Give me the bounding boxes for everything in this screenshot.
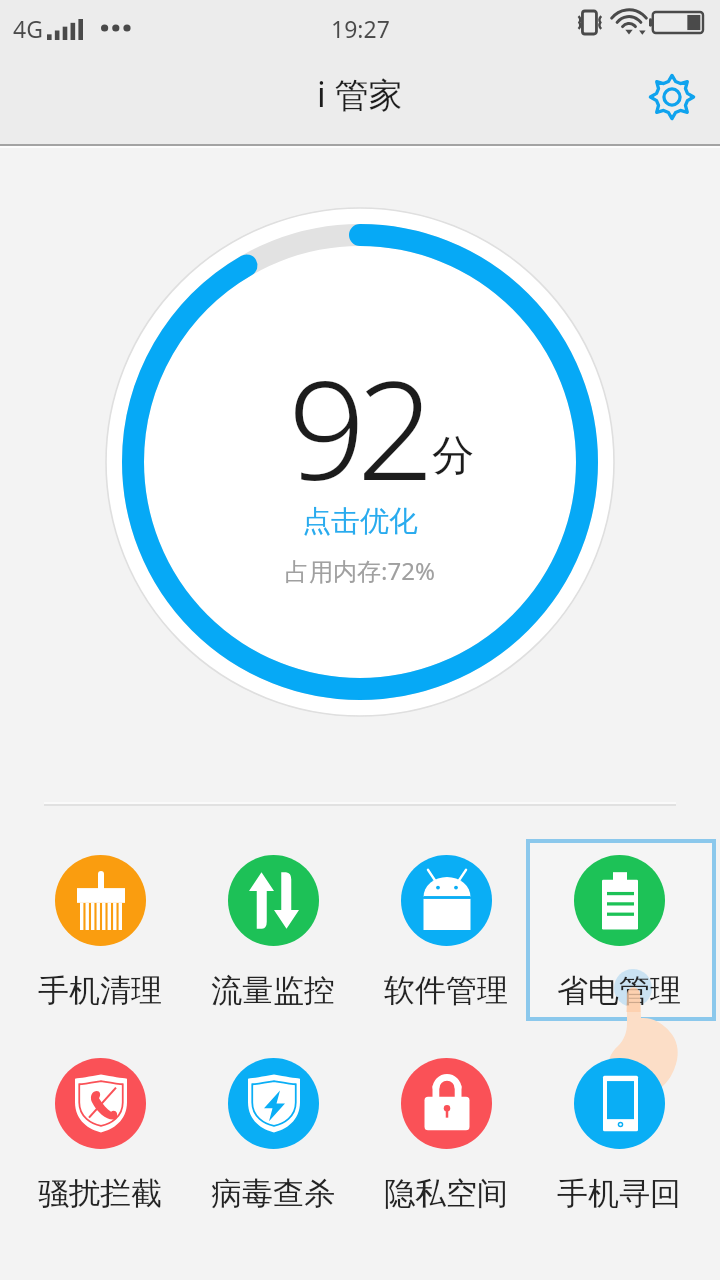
staticText: 省电管理 [557, 971, 681, 1010]
button[interactable]: 隐私空间 [360, 1046, 532, 1222]
staticText: 病毒查杀 [211, 1174, 335, 1213]
staticText: 点击优化 [302, 503, 418, 540]
button[interactable]: 手机清理 [14, 843, 186, 1019]
button[interactable]: 流量监控 [187, 843, 359, 1019]
staticText: 流量监控 [211, 971, 335, 1010]
staticText: 软件管理 [384, 971, 508, 1010]
button[interactable]: 手机寻回 [533, 1046, 705, 1222]
button[interactable]: 病毒查杀 [187, 1046, 359, 1222]
staticText: 分 [432, 430, 474, 483]
staticText: 占用内存:72% [285, 554, 435, 587]
button[interactable]: 骚扰拦截 [14, 1046, 186, 1222]
staticText: 手机寻回 [557, 1174, 681, 1213]
staticText: 19:27 [331, 13, 390, 44]
staticText: 骚扰拦截 [38, 1174, 162, 1213]
button[interactable]: Settings [641, 66, 703, 128]
button[interactable]: 点击优化 [302, 503, 418, 540]
staticText: 92 [288, 335, 426, 520]
staticText: 手机清理 [38, 971, 162, 1010]
button[interactable]: 省电管理 [533, 843, 705, 1019]
staticText: 隐私空间 [384, 1174, 508, 1213]
button[interactable]: 软件管理 [360, 843, 532, 1019]
staticText: 4G [13, 13, 43, 44]
staticText: i 管家 [317, 71, 403, 117]
